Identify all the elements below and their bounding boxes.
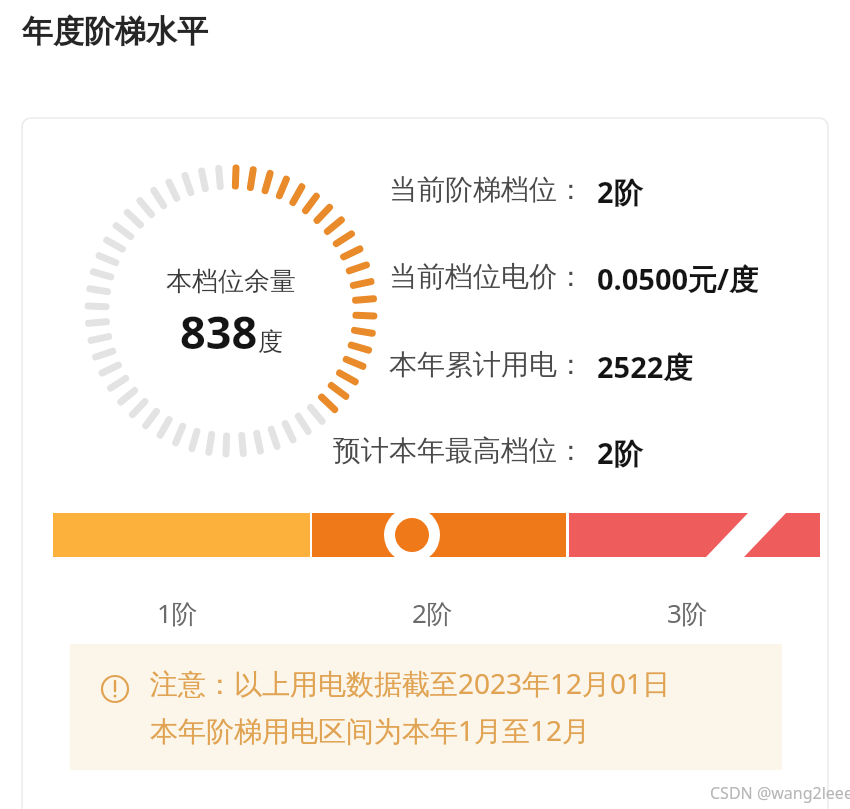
other: Notice: [100, 674, 130, 704]
staticText: 度: [258, 326, 283, 357]
button[interactable]: [22, 118, 828, 809]
staticText: 2522度: [597, 347, 693, 387]
staticText: 本年阶梯用电区间为本年1月至12月: [150, 711, 591, 749]
staticText: 注意：以上用电数据截至2023年12月01日: [150, 664, 671, 702]
staticText: 年度阶梯水平: [22, 12, 208, 51]
staticText: 1阶: [157, 595, 198, 631]
staticText: 0.0500元/度: [597, 259, 759, 299]
staticText: CSDN @wang2leee: [710, 782, 850, 804]
staticText: 3阶: [667, 595, 708, 631]
staticText: 2阶: [597, 172, 643, 212]
staticText: 本年累计用电：: [389, 347, 585, 382]
staticText: 2阶: [412, 595, 453, 631]
staticText: 838: [180, 301, 258, 362]
staticText: 预计本年最高档位：: [333, 433, 585, 468]
staticText: 本档位余量: [166, 265, 296, 298]
staticText: 当前档位电价：: [389, 259, 585, 294]
button[interactable]: [70, 644, 782, 770]
staticText: 2阶: [597, 433, 643, 473]
staticText: 当前阶梯档位：: [389, 172, 585, 207]
